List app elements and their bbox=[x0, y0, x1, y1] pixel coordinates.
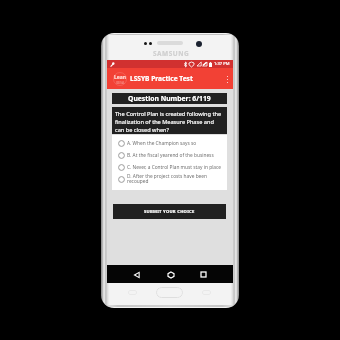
staticText: LSSYB Practice Test bbox=[130, 74, 193, 83]
staticText: SUBMIT YOUR CHOICE bbox=[144, 209, 195, 215]
button[interactable]: Recents bbox=[197, 268, 210, 281]
button[interactable]: More options bbox=[221, 73, 233, 85]
button[interactable]: Back bbox=[130, 268, 143, 281]
staticText: The Control Plan is created following th… bbox=[115, 110, 222, 134]
staticText: Question Number: 6/119 bbox=[128, 94, 211, 103]
button[interactable]: Home bbox=[164, 268, 177, 281]
button[interactable]: A. When the Champion says so bbox=[112, 137, 227, 149]
staticText: Lean bbox=[114, 74, 127, 81]
staticText: B. At the fiscal yearend of the business bbox=[127, 152, 214, 159]
staticText: D. After the project costs have been rec… bbox=[127, 173, 223, 185]
button[interactable]: SUBMIT YOUR CHOICE bbox=[113, 204, 226, 219]
staticText: C. Never, a Control Plan must stay in pl… bbox=[127, 164, 222, 171]
staticText: SIGMA bbox=[116, 81, 125, 85]
staticText: SAMSUNG bbox=[153, 49, 190, 58]
button[interactable]: D. After the project costs have been rec… bbox=[112, 173, 227, 185]
staticText: A. When the Champion says so bbox=[127, 140, 197, 147]
button[interactable]: C. Never, a Control Plan must stay in pl… bbox=[112, 161, 227, 173]
staticText: 1:37 PM bbox=[214, 61, 230, 67]
button[interactable]: B. At the fiscal yearend of the business bbox=[112, 149, 227, 161]
